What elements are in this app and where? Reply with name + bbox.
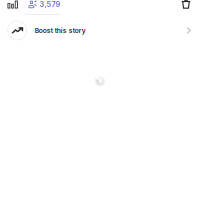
- button[interactable]: Delete story: [181, 0, 190, 8]
- button[interactable]: 3,579 readers: [27, 0, 60, 9]
- button[interactable]: Boost this story: [0, 21, 200, 40]
- staticText: Boost this story: [35, 26, 86, 35]
- button[interactable]: Story stats: [7, 1, 18, 8]
- staticText: 3,579: [39, 0, 60, 9]
